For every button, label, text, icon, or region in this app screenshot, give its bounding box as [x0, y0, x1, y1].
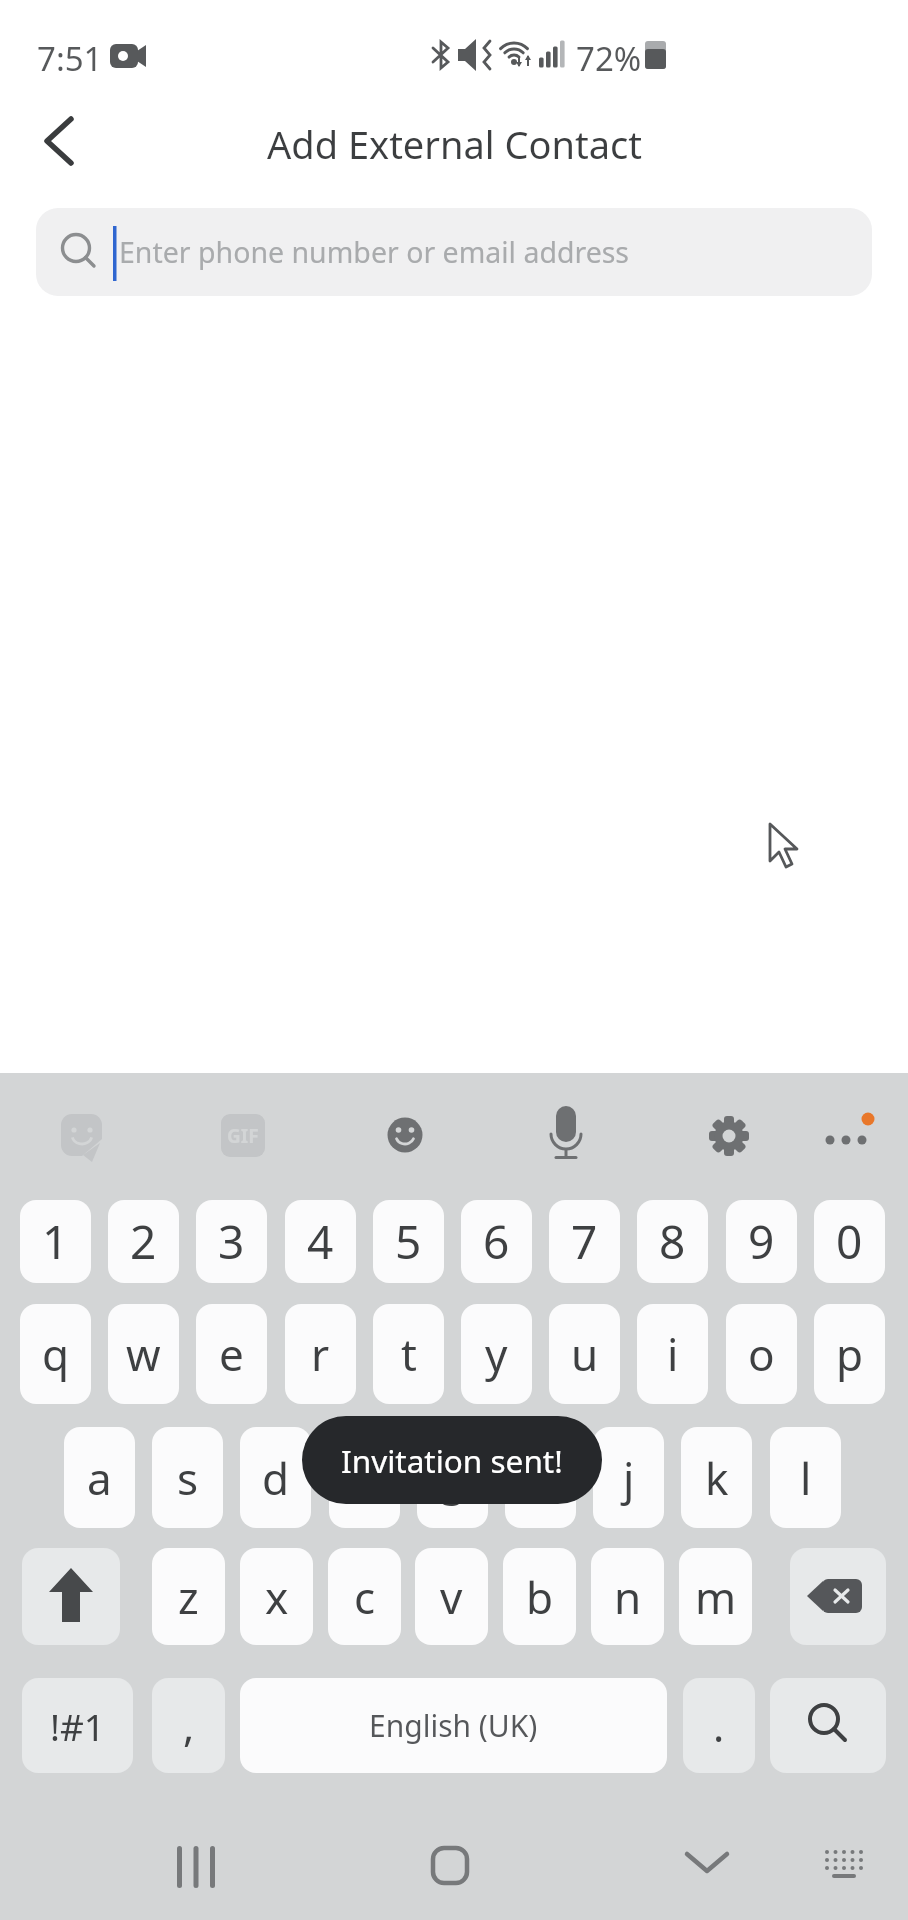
staticText: 0 — [836, 1210, 863, 1273]
button[interactable]: e — [196, 1304, 267, 1404]
button[interactable] — [790, 1548, 886, 1645]
button[interactable]: 5 — [373, 1200, 444, 1283]
button[interactable]: w — [108, 1304, 179, 1404]
staticText: 3 — [218, 1210, 245, 1273]
staticText: z — [178, 1567, 199, 1627]
staticText: i — [667, 1324, 679, 1384]
staticText: m — [695, 1567, 737, 1627]
staticText: u — [571, 1324, 599, 1384]
button[interactable]: g — [417, 1427, 488, 1528]
staticText: l — [800, 1448, 812, 1508]
button[interactable]: 2 — [108, 1200, 179, 1283]
button[interactable]: 7 — [549, 1200, 620, 1283]
button[interactable]: s — [152, 1427, 223, 1528]
button[interactable]: k — [681, 1427, 752, 1528]
button[interactable] — [365, 1097, 445, 1177]
staticText: b — [526, 1567, 554, 1627]
button[interactable]: j — [593, 1427, 664, 1528]
button[interactable]: 0 — [814, 1200, 885, 1283]
staticText: a — [87, 1448, 112, 1508]
staticText: English (UK) — [369, 1705, 538, 1746]
button[interactable] — [41, 1097, 121, 1177]
button[interactable]: l — [770, 1427, 841, 1528]
button[interactable] — [526, 1097, 606, 1177]
staticText: 9 — [748, 1210, 775, 1273]
staticText: 7:51 — [37, 36, 103, 81]
button[interactable] — [202, 1097, 282, 1177]
staticText: s — [177, 1448, 199, 1508]
staticText: k — [705, 1448, 729, 1508]
staticText: q — [42, 1324, 70, 1384]
button[interactable]: z — [152, 1548, 225, 1645]
staticText: n — [614, 1567, 642, 1627]
button[interactable]: 9 — [726, 1200, 797, 1283]
button[interactable]: p — [814, 1304, 885, 1404]
staticText: r — [311, 1324, 330, 1384]
staticText: 7 — [571, 1210, 598, 1273]
button[interactable] — [689, 1097, 769, 1177]
staticText: d — [262, 1448, 290, 1508]
button[interactable]: u — [549, 1304, 620, 1404]
button[interactable]: 6 — [461, 1200, 532, 1283]
staticText: g — [439, 1448, 467, 1508]
staticText: 8 — [659, 1210, 686, 1273]
button[interactable]: y — [461, 1304, 532, 1404]
staticText: !#1 — [50, 1701, 106, 1751]
staticText: GIF — [227, 1123, 259, 1149]
button[interactable]: b — [503, 1548, 576, 1645]
button[interactable]: i — [637, 1304, 708, 1404]
button[interactable]: 4 — [285, 1200, 356, 1283]
staticText: Add External Contact — [267, 118, 642, 170]
button[interactable] — [770, 1678, 886, 1773]
button[interactable]: c — [328, 1548, 401, 1645]
button[interactable] — [405, 1830, 495, 1905]
button[interactable] — [798, 1830, 888, 1905]
button[interactable]: !#1 — [22, 1678, 133, 1773]
staticText: 72% — [576, 36, 642, 81]
button[interactable]: a — [64, 1427, 135, 1528]
button[interactable]: v — [415, 1548, 488, 1645]
staticText: Enter phone number or email address — [119, 233, 630, 272]
staticText: j — [623, 1448, 635, 1508]
button[interactable] — [22, 1548, 120, 1645]
button[interactable]: n — [591, 1548, 664, 1645]
button[interactable]: English (UK) — [240, 1678, 667, 1773]
button[interactable]: d — [240, 1427, 311, 1528]
button[interactable]: 8 — [637, 1200, 708, 1283]
button[interactable]: o — [726, 1304, 797, 1404]
button[interactable]: Enter phone number or email address — [36, 208, 872, 296]
button[interactable]: f — [329, 1427, 400, 1528]
staticText: f — [357, 1448, 373, 1508]
button[interactable]: 3 — [196, 1200, 267, 1283]
staticText: x — [265, 1567, 289, 1627]
staticText: 1 — [42, 1210, 69, 1273]
button[interactable]: q — [20, 1304, 91, 1404]
staticText: t — [401, 1324, 417, 1384]
staticText: o — [748, 1324, 775, 1384]
staticText: 6 — [483, 1210, 510, 1273]
button[interactable]: m — [679, 1548, 752, 1645]
staticText: , — [183, 1697, 195, 1754]
staticText: v — [440, 1567, 463, 1627]
button[interactable]: . — [683, 1678, 755, 1773]
staticText: c — [354, 1567, 376, 1627]
button[interactable]: r — [285, 1304, 356, 1404]
staticText: y — [485, 1324, 508, 1384]
button[interactable]: t — [373, 1304, 444, 1404]
staticText: 4 — [307, 1210, 334, 1273]
staticText: 5 — [395, 1210, 422, 1273]
button[interactable] — [806, 1097, 886, 1177]
staticText: p — [836, 1324, 864, 1384]
button[interactable]: , — [152, 1678, 225, 1773]
staticText: Invitation sent! — [341, 1439, 563, 1482]
staticText: h — [527, 1448, 555, 1508]
button[interactable]: x — [240, 1548, 313, 1645]
button[interactable]: 1 — [20, 1200, 91, 1283]
button[interactable] — [24, 108, 96, 180]
button[interactable] — [662, 1830, 752, 1905]
staticText: w — [126, 1324, 161, 1384]
button[interactable] — [151, 1830, 241, 1905]
staticText: 2 — [130, 1210, 157, 1273]
button[interactable]: h — [505, 1427, 576, 1528]
staticText: e — [219, 1324, 244, 1384]
